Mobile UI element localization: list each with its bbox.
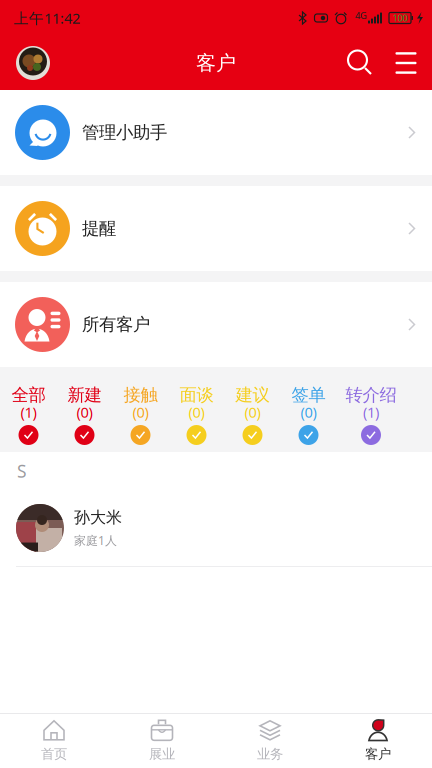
staticText: 孙大米 — [74, 508, 122, 527]
staticText: (0) — [132, 402, 148, 422]
staticText: 新建 — [67, 384, 101, 406]
staticText: (1) — [20, 402, 36, 422]
staticText: 签单 — [291, 384, 325, 406]
button[interactable]: 接触 — [112, 367, 168, 452]
staticText: 所有客户 — [82, 314, 150, 335]
staticText: 客户 — [196, 51, 236, 75]
staticText: 全部 — [11, 384, 45, 406]
button[interactable]: 首页 — [0, 713, 108, 768]
button[interactable]: 孙大米 — [0, 490, 432, 566]
staticText: 家庭1人 — [74, 532, 117, 548]
staticText: (0) — [188, 402, 204, 422]
button[interactable]: 面谈 — [168, 367, 224, 452]
staticText: 建议 — [235, 384, 269, 406]
staticText: 业务 — [257, 746, 283, 762]
button[interactable]: 业务 — [216, 713, 324, 768]
button[interactable]: 转介绍 — [336, 367, 405, 452]
staticText: 客户 — [365, 746, 391, 762]
button[interactable]: 管理小助手 — [0, 90, 432, 175]
staticText: 面谈 — [179, 384, 213, 406]
button[interactable]: 签单 — [280, 367, 336, 452]
button[interactable]: 展业 — [108, 713, 216, 768]
staticText: 上午11:42 — [14, 8, 80, 28]
staticText: 首页 — [41, 746, 67, 762]
staticText: (1) — [363, 402, 379, 422]
staticText: 展业 — [149, 746, 175, 762]
button[interactable]: Menu — [389, 46, 423, 80]
button[interactable]: 客户 — [324, 713, 432, 768]
staticText: S — [17, 459, 27, 482]
staticText: (0) — [76, 402, 92, 422]
button[interactable]: Search — [343, 46, 377, 80]
button[interactable]: 全部 — [0, 367, 56, 452]
staticText: 转介绍 — [345, 384, 396, 406]
staticText: 接触 — [123, 384, 157, 406]
button[interactable]: 建议 — [224, 367, 280, 452]
button[interactable]: 新建 — [56, 367, 112, 452]
staticText: 管理小助手 — [82, 122, 167, 143]
button[interactable]: 所有客户 — [0, 282, 432, 367]
button[interactable]: Profile — [16, 46, 50, 80]
staticText: 4G — [355, 9, 367, 22]
staticText: 100 — [392, 12, 407, 24]
staticText: (0) — [244, 402, 260, 422]
staticText: 提醒 — [82, 218, 116, 239]
staticText: (0) — [300, 402, 316, 422]
button[interactable]: 提醒 — [0, 186, 432, 271]
